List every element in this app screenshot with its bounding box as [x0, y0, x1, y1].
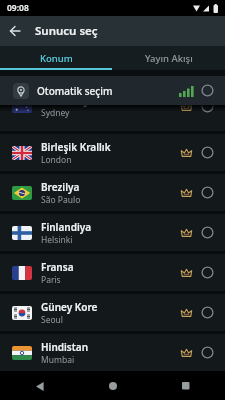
staticText: Avustralya — [41, 105, 96, 107]
button[interactable]: Güney Kore — [0, 294, 225, 331]
staticText: Seoul — [41, 314, 64, 326]
button[interactable]: Otomatik seçim — [0, 76, 225, 105]
button[interactable]: Konum — [0, 46, 112, 70]
staticText: Konum — [40, 52, 73, 65]
button[interactable]: Brezilya — [0, 174, 225, 211]
button[interactable]: Finlandiya — [0, 214, 225, 251]
staticText: Paris — [41, 274, 61, 286]
staticText: 09:08 — [7, 2, 29, 14]
button[interactable] — [0, 16, 30, 46]
staticText: Birleşik Krallık — [41, 140, 111, 154]
staticText: Hindistan — [41, 340, 89, 354]
staticText: Sydney — [41, 107, 70, 119]
button[interactable]: Avustralya — [0, 105, 225, 131]
staticText: Fransa — [41, 260, 74, 274]
button[interactable]: Hindistan — [0, 334, 225, 371]
staticText: Finlandiya — [41, 220, 92, 234]
button[interactable]: Birleşik Krallık — [0, 134, 225, 171]
staticText: Sunucu seç — [35, 23, 98, 39]
button[interactable] — [103, 376, 123, 396]
staticText: Mumbai — [41, 354, 75, 366]
staticText: Yayın Akışı — [145, 52, 193, 65]
staticText: Otomatik seçim — [37, 84, 179, 98]
button[interactable]: Fransa — [0, 254, 225, 291]
button[interactable] — [30, 376, 50, 396]
staticText: Helsinki — [41, 234, 73, 246]
staticText: Güney Kore — [41, 300, 98, 314]
staticText: São Paulo — [41, 194, 81, 206]
button[interactable]: Yayın Akışı — [112, 46, 225, 70]
staticText: Brezilya — [41, 180, 80, 194]
button[interactable] — [176, 376, 196, 396]
staticText: London — [41, 154, 72, 166]
